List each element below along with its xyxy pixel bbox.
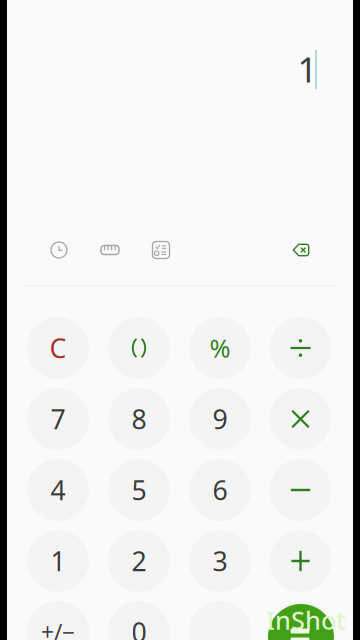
button[interactable] xyxy=(269,601,331,640)
button[interactable]: 7 xyxy=(27,388,89,450)
button[interactable]: 8 xyxy=(108,388,170,450)
staticText: 1 xyxy=(297,46,317,92)
button[interactable] xyxy=(108,317,170,379)
button[interactable]: Delete xyxy=(281,233,321,267)
button[interactable]: 9 xyxy=(189,388,251,450)
button[interactable]: 1 xyxy=(27,530,89,592)
staticText: 3 xyxy=(212,543,227,579)
button[interactable]: 6 xyxy=(189,459,251,521)
button[interactable] xyxy=(269,530,331,592)
staticText: 8 xyxy=(131,401,146,437)
staticText: 2 xyxy=(131,543,146,579)
button[interactable]: 2 xyxy=(108,530,170,592)
button[interactable]: % xyxy=(189,317,251,379)
button[interactable]: Unit converter xyxy=(93,233,127,267)
button[interactable]: +/− xyxy=(27,601,89,640)
staticText: 4 xyxy=(50,472,65,508)
staticText: +/− xyxy=(41,617,75,640)
staticText: InShot xyxy=(266,603,346,637)
button[interactable]: C xyxy=(27,317,89,379)
staticText: 9 xyxy=(212,401,227,437)
button[interactable]: 5 xyxy=(108,459,170,521)
staticText: 6 xyxy=(212,472,227,508)
button[interactable]: Formulas xyxy=(144,233,178,267)
button[interactable] xyxy=(269,317,331,379)
button[interactable]: 4 xyxy=(27,459,89,521)
button[interactable]: 0 xyxy=(108,601,170,640)
staticText: 0 xyxy=(131,614,146,640)
button[interactable] xyxy=(269,459,331,521)
staticText: % xyxy=(209,331,230,365)
staticText: C xyxy=(49,330,66,366)
staticText: 1 xyxy=(50,543,65,579)
staticText: 5 xyxy=(131,472,146,508)
button[interactable]: History xyxy=(42,233,76,267)
button[interactable] xyxy=(269,388,331,450)
staticText: 7 xyxy=(50,401,65,437)
button[interactable]: 3 xyxy=(189,530,251,592)
